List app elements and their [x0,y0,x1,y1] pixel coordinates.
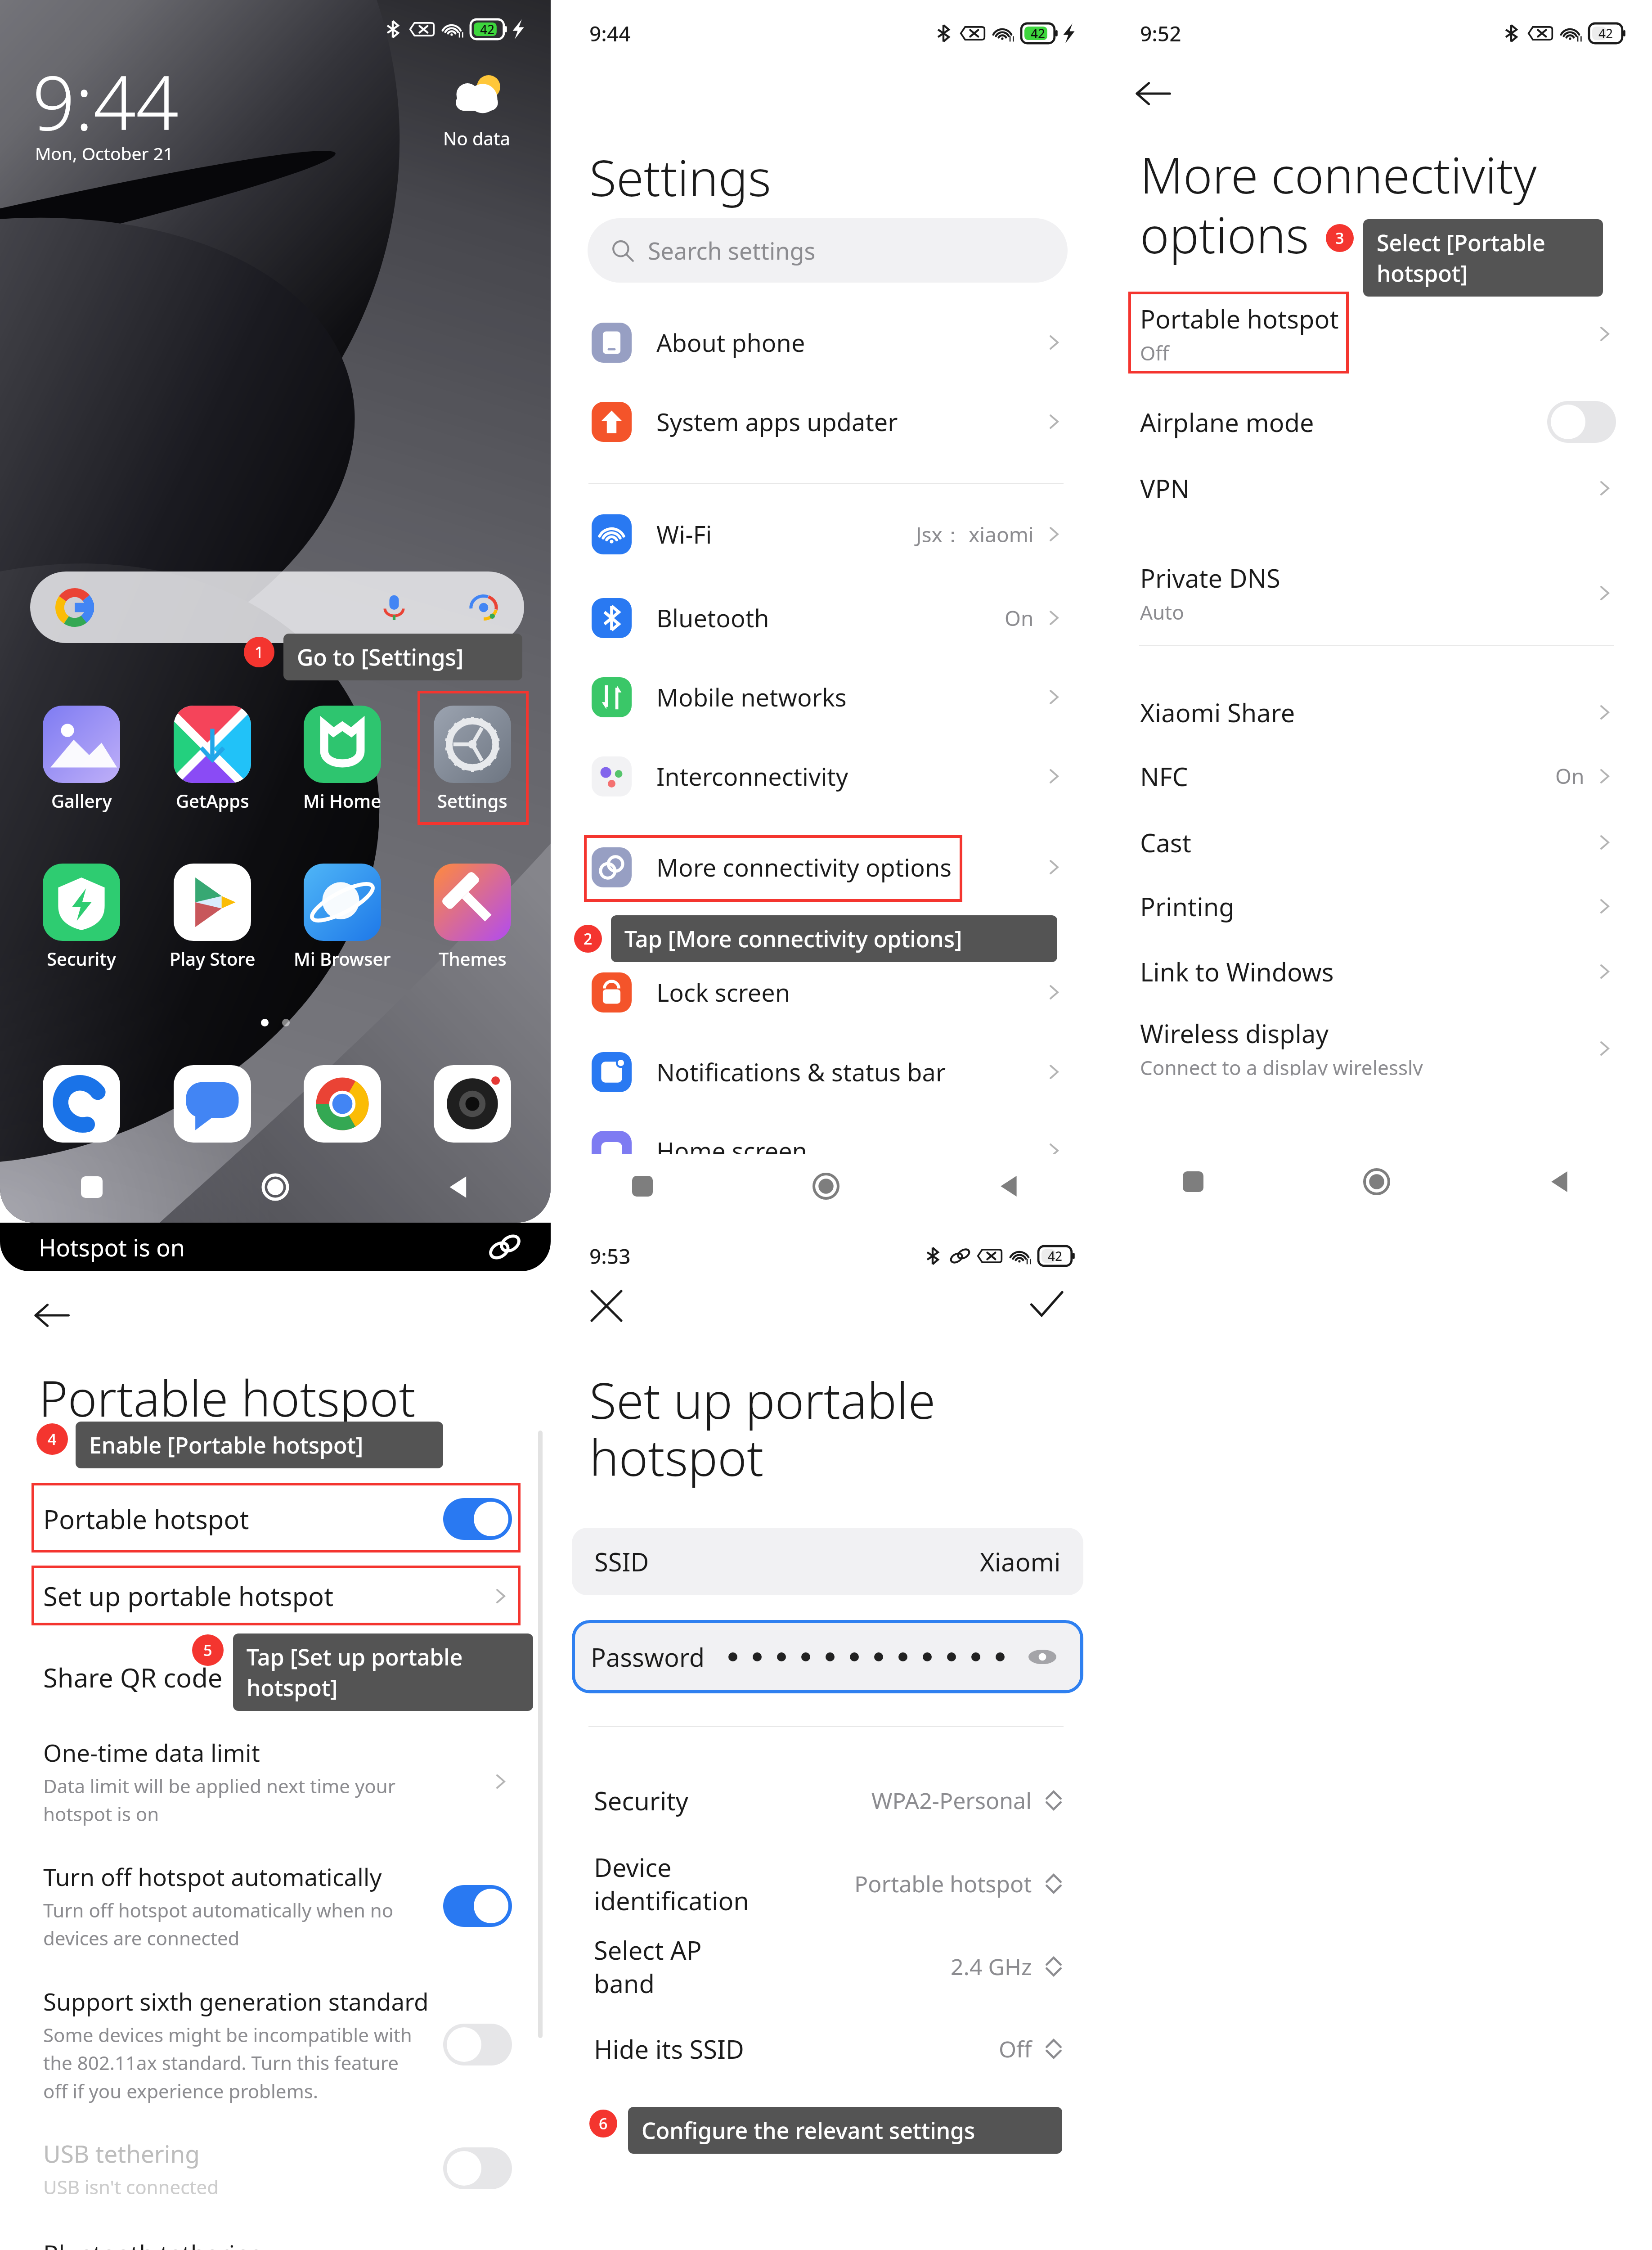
button[interactable]: Security [551,1767,1101,1834]
button[interactable]: Turn off hotspot automatically [0,1838,551,1973]
button[interactable]: Home [812,1172,840,1200]
staticText: Airplane mode [1140,405,1314,439]
staticText: Select AP band [594,1933,702,2000]
button[interactable]: Private DNS [1101,550,1652,636]
other: Show password [1028,1643,1056,1671]
button[interactable]: Themes [417,860,528,971]
staticText: Security [594,1783,689,1818]
staticText: Printing [1140,889,1235,923]
button[interactable]: Toggle [443,1498,512,1540]
button[interactable]: Share QR code [0,1644,551,1710]
button[interactable]: Cast [1101,810,1652,875]
button[interactable]: Chrome [304,1065,381,1143]
button[interactable]: Search [588,218,1068,283]
staticText: Xiaomi [980,1544,1061,1579]
staticText: Some devices might be incompatible with … [43,2022,412,2104]
button[interactable]: SSID [572,1528,1083,1595]
button[interactable]: Select AP band [551,1926,1101,2007]
button[interactable]: Back [447,1175,471,1199]
button[interactable]: Back [27,1291,76,1340]
staticText: 9:52 [1140,19,1181,48]
staticText: NFC [1140,759,1189,793]
button[interactable]: USB tethering [0,2101,551,2236]
button[interactable]: Toggle [1547,401,1616,443]
button[interactable]: Security [26,860,137,971]
button[interactable]: Play Store [157,860,268,971]
button[interactable]: Home screen [551,1111,1101,1154]
staticText: System apps updater [656,405,898,438]
button[interactable]: VPN [1101,455,1652,521]
button[interactable]: Toggle [443,2147,512,2189]
staticText: Support sixth generation standard [43,1985,429,2017]
button[interactable]: Wi-Fi [551,494,1101,574]
staticText: Enable [Portable hotspot] [89,1430,364,1460]
button[interactable]: About phone [551,302,1101,382]
button[interactable]: Interconnectivity [551,736,1101,816]
button[interactable]: Home [1363,1168,1391,1196]
button[interactable]: Back [998,1174,1021,1198]
button[interactable]: Device identification [551,1843,1101,1924]
staticText: Go to [Settings] [297,642,464,672]
button[interactable]: More connectivity options [551,827,1101,907]
staticText: 42 [1598,25,1613,42]
staticText: 9:53 [589,1242,631,1270]
button[interactable]: Gallery [26,702,137,813]
staticText: Link to Windows [1140,954,1334,989]
button[interactable]: Hotspot [487,1229,523,1265]
staticText: Portable hotspot [854,1868,1032,1899]
button[interactable]: Bluetooth [551,578,1101,658]
button[interactable]: Toggle [443,1885,512,1927]
button[interactable]: Close [584,1283,629,1328]
staticText: Select [Portable hotspot] [1377,227,1589,288]
button[interactable]: System apps updater [551,382,1101,462]
button[interactable]: Recents [81,1176,103,1198]
button[interactable]: Hide its SSID [551,2016,1101,2082]
button[interactable] [30,571,524,643]
button[interactable]: Notifications & status bar [551,1032,1101,1112]
staticText: More connectivity options [1140,140,1537,268]
button[interactable]: NFC [1101,743,1652,809]
button[interactable]: Confirm [1024,1283,1069,1328]
button[interactable]: One-time data limit [0,1714,551,1849]
button[interactable]: Settings [417,702,528,813]
button[interactable]: Toggle [443,2024,512,2065]
button[interactable]: Back [1128,69,1178,118]
button[interactable]: Password [572,1620,1083,1693]
button[interactable]: Mobile networks [551,657,1101,737]
button[interactable]: Printing [1101,873,1652,939]
button[interactable]: Bluetooth tethering [0,2215,551,2250]
button[interactable]: Link to Windows [1101,939,1652,1004]
button[interactable]: Phone [43,1065,120,1143]
staticText: 2 [584,928,593,949]
button[interactable]: Back [1549,1170,1572,1193]
staticText: Security [47,946,116,971]
button[interactable]: Xiaomi Share [1101,679,1652,745]
button[interactable]: Mi Home [287,702,398,813]
staticText: Wi-Fi [656,517,712,551]
staticText: Hotspot is on [39,1231,185,1263]
button[interactable]: Recents [632,1176,653,1197]
staticText: SSID [594,1544,649,1579]
button[interactable]: Set up portable hotspot [0,1566,551,1626]
button[interactable]: GetApps [157,702,268,813]
button[interactable]: Msg [174,1065,251,1143]
staticText: Interconnectivity [656,760,848,793]
button[interactable]: Portable hotspot [0,1484,551,1554]
button[interactable]: Portable hotspot [1101,291,1652,377]
button[interactable]: Recents [1183,1171,1203,1192]
button[interactable]: Mi Browser [287,860,398,971]
button[interactable]: Wireless display [1101,1006,1652,1075]
button[interactable]: Support sixth generation standard [0,1977,551,2112]
button[interactable]: Lock screen [551,952,1101,1032]
button[interactable]: Airplane mode [1101,389,1652,454]
staticText: Device identification [594,1850,749,1917]
staticText: Hide its SSID [594,2032,744,2066]
staticText: Settings [437,788,507,813]
staticText: 2.4 GHz [951,1951,1032,1982]
staticText: Set up portable hotspot [589,1366,936,1491]
staticText: Off [1140,339,1169,366]
staticText: Mi Home [303,788,382,813]
staticText: Auto [1140,598,1184,625]
button[interactable]: Home [261,1173,290,1201]
button[interactable]: Camera [434,1065,511,1143]
